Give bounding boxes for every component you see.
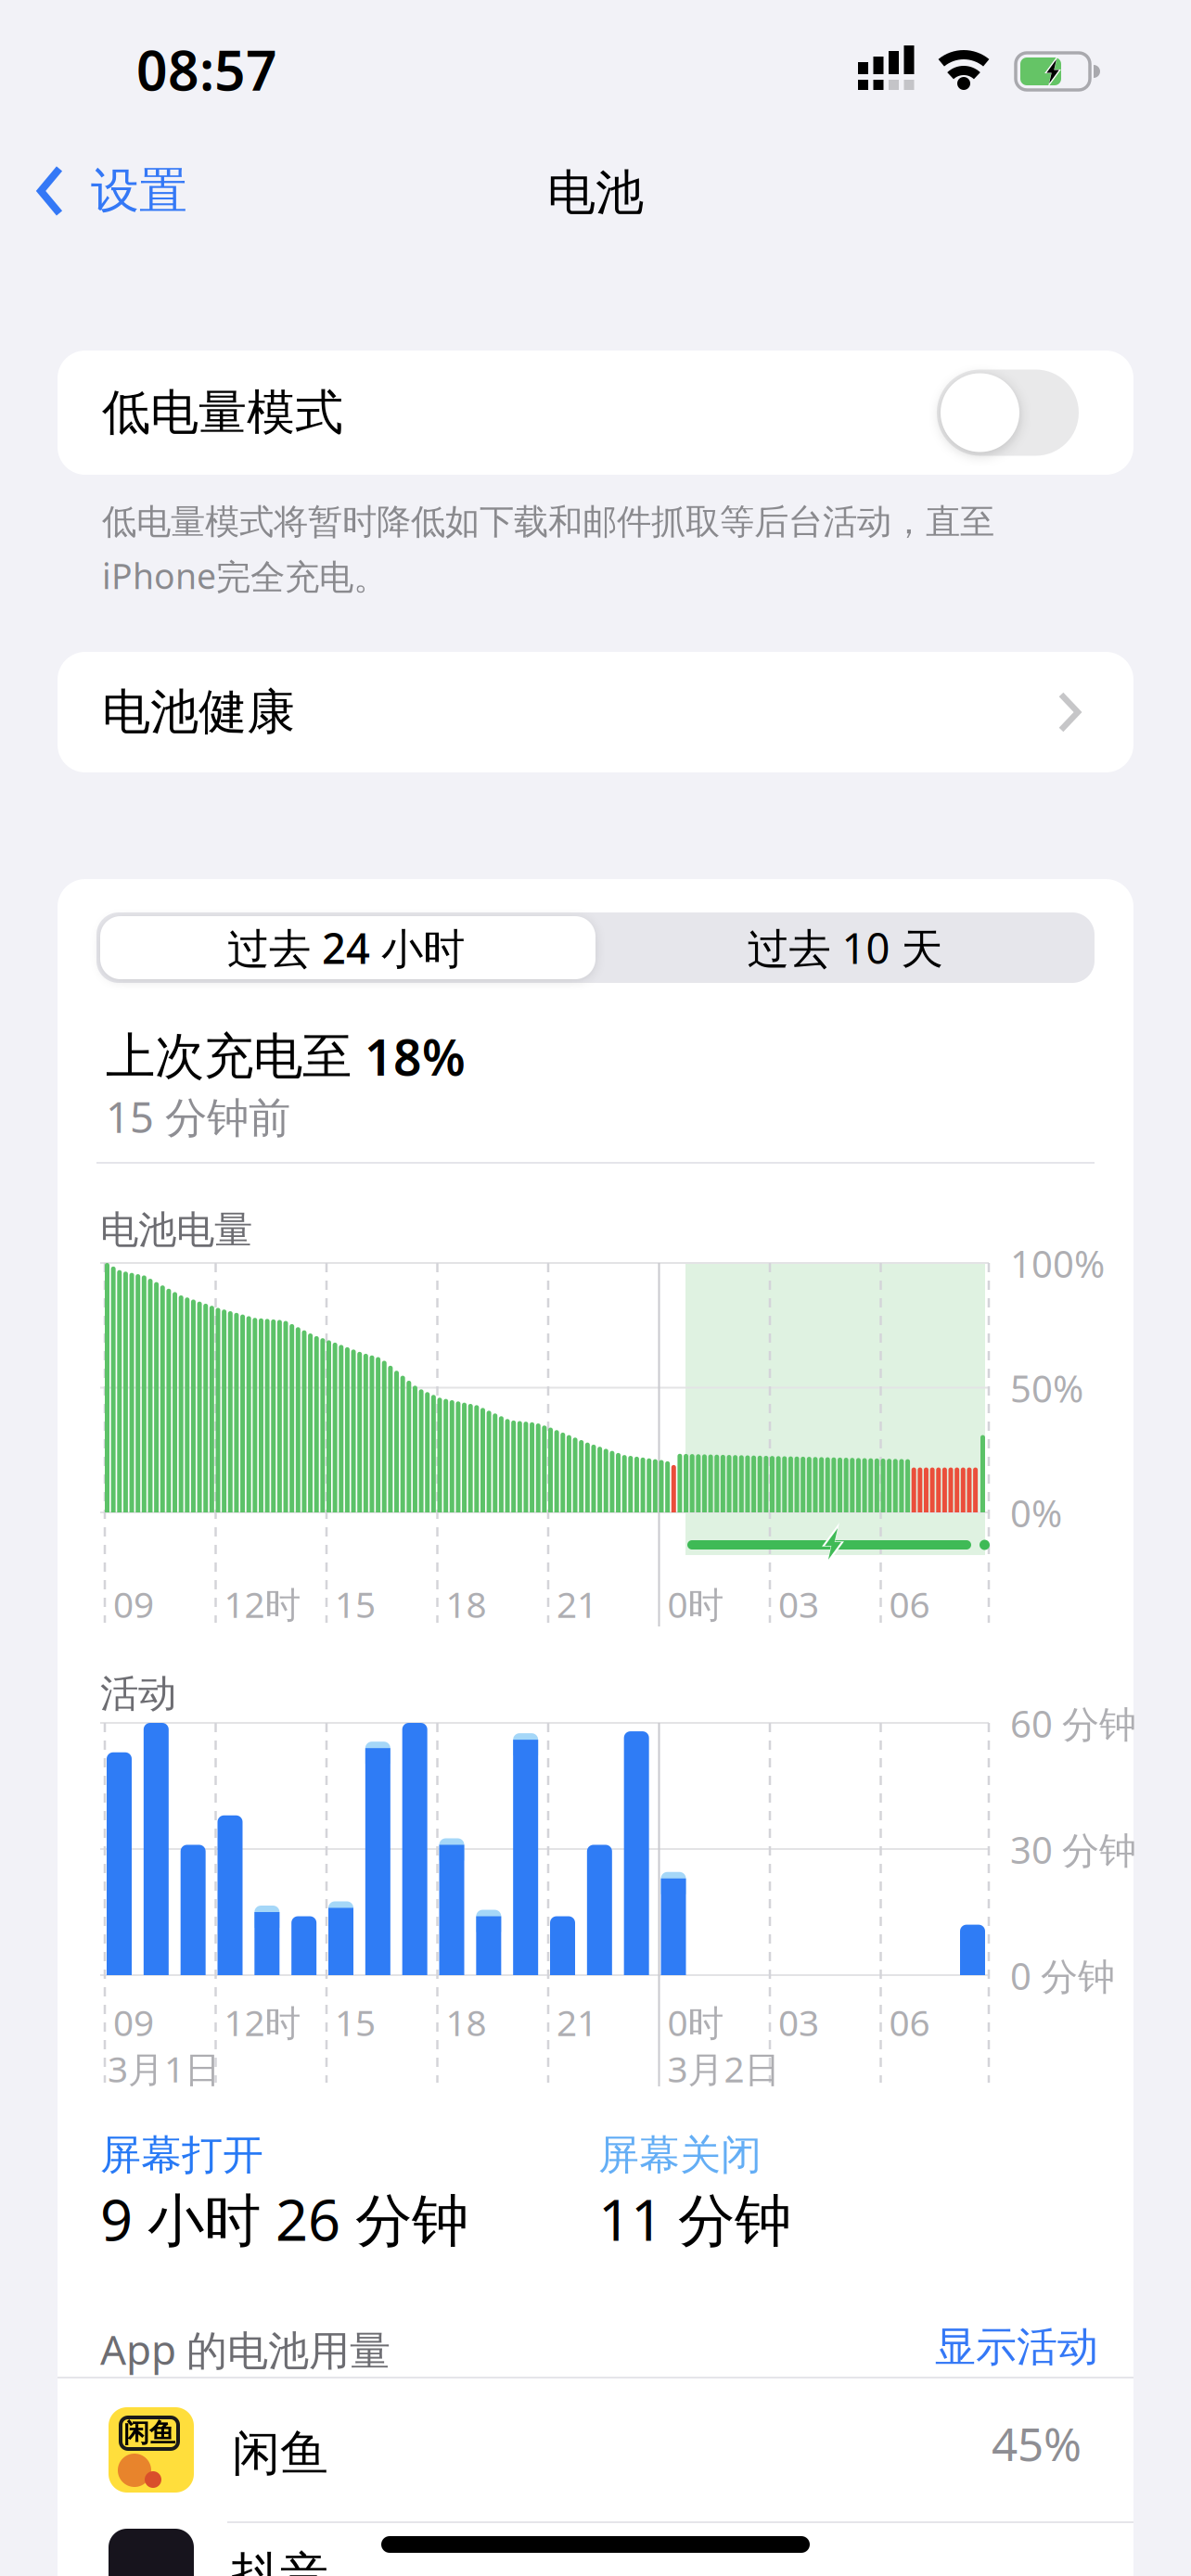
staticText: 15 — [335, 1998, 376, 2046]
staticText: 0% — [1010, 1488, 1062, 1538]
button[interactable]: 设置 — [33, 161, 187, 221]
staticText: 低电量模式将暂时降低如下载和邮件抓取等后台活动，直至 — [102, 501, 994, 543]
staticText: 抖音 — [232, 2545, 328, 2576]
staticText: 30 分钟 — [1010, 1825, 1136, 1874]
staticText: 过去 10 天 — [747, 920, 943, 976]
staticText: 21 — [557, 1580, 597, 1628]
staticText: 45% — [992, 2413, 1082, 2474]
staticText: 100% — [1010, 1239, 1105, 1288]
staticText: 12时 — [224, 1580, 301, 1628]
staticText: 18 — [446, 1998, 487, 2046]
staticText: 03 — [778, 1580, 819, 1628]
staticText: 0 分钟 — [1010, 1951, 1115, 2000]
staticText: 18 — [446, 1580, 487, 1628]
staticText: 18% — [365, 1024, 466, 1089]
staticText: 06 — [889, 1998, 930, 2046]
staticText: 50% — [1010, 1364, 1083, 1413]
staticText: 08:57 — [136, 33, 277, 106]
staticText: 活动 — [100, 1670, 176, 1717]
staticText: 03 — [778, 1998, 819, 2046]
staticText: 15 — [335, 1580, 376, 1628]
staticText: 06 — [889, 1580, 930, 1628]
button[interactable]: 电池健康 — [58, 652, 1133, 772]
staticText: 0时 — [667, 1998, 724, 2046]
staticText: 电池健康 — [102, 683, 295, 742]
button[interactable]: 过去 10 天 — [595, 912, 1095, 983]
button[interactable]: 低电量模式 — [58, 351, 1133, 475]
staticText: 闲鱼 — [232, 2424, 328, 2483]
staticText: 60 分钟 — [1010, 1699, 1136, 1748]
staticText: iPhone完全充电。 — [102, 553, 388, 599]
staticText: 11 分钟 — [598, 2181, 791, 2256]
staticText: 屏幕关闭 — [598, 2130, 762, 2180]
button[interactable]: 抖音 — [58, 2523, 1133, 2576]
staticText: 21 — [557, 1998, 597, 2046]
staticText: App 的电池用量 — [100, 2322, 391, 2376]
staticText: 09 — [113, 1580, 154, 1628]
staticText: 9 小时 26 分钟 — [100, 2181, 468, 2256]
button[interactable]: 闲鱼 — [58, 2394, 1133, 2509]
staticText: 上次充电至 — [106, 1026, 352, 1087]
staticText: 屏幕打开 — [100, 2130, 263, 2180]
staticText: 电池 — [547, 163, 644, 222]
staticText: 过去 24 小时 — [227, 920, 465, 976]
staticText: 设置 — [91, 161, 187, 221]
staticText: 闲鱼 — [123, 2417, 175, 2449]
button[interactable]: 过去 24 小时 — [96, 912, 595, 983]
staticText: 3月2日 — [667, 2045, 781, 2092]
staticText: 低电量模式 — [102, 383, 343, 442]
staticText: 3月1日 — [108, 2045, 221, 2092]
staticText: 09 — [113, 1998, 154, 2046]
staticText: 0时 — [667, 1580, 724, 1628]
staticText: 显示活动 — [935, 2322, 1098, 2372]
staticText: 15 分钟前 — [106, 1089, 290, 1144]
button[interactable]: 显示活动 — [935, 2322, 1098, 2372]
staticText: 12时 — [224, 1998, 301, 2046]
staticText: 电池电量 — [100, 1206, 252, 1254]
